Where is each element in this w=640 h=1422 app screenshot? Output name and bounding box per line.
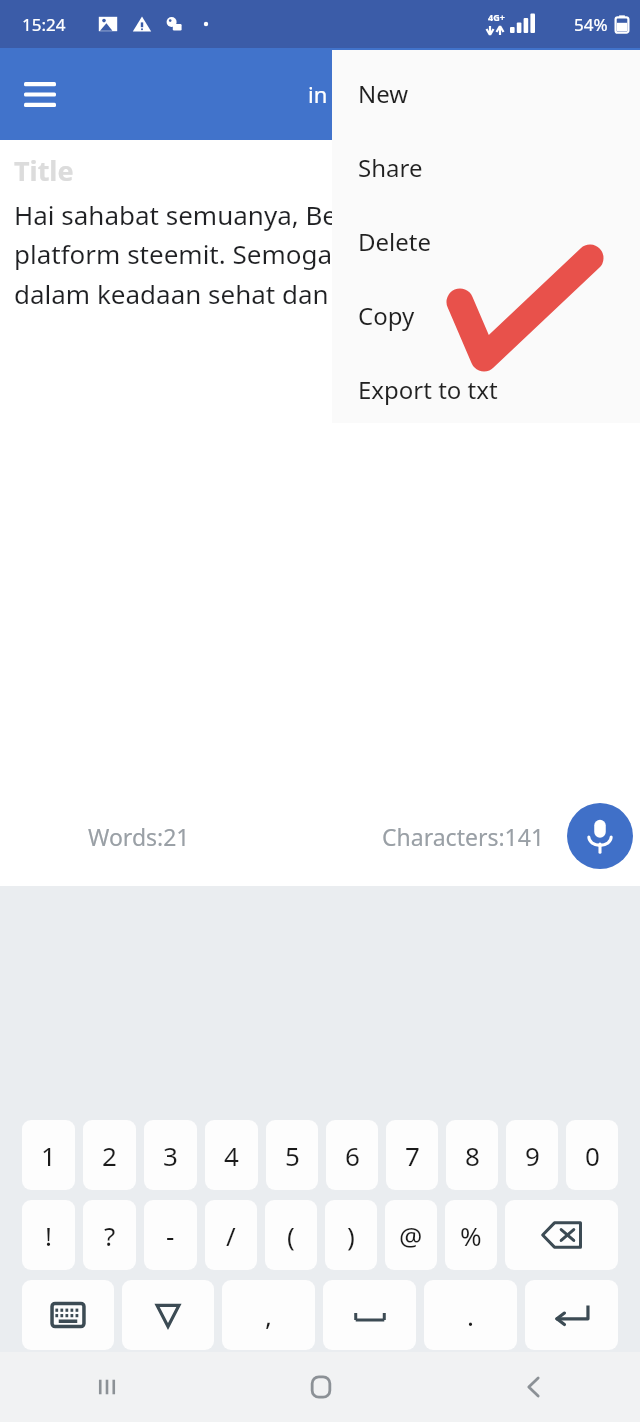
staticText: 4G+ [488,11,505,23]
staticText: Copy [358,299,415,332]
button[interactable]: 8 [446,1120,498,1190]
button[interactable]: Space [323,1280,416,1350]
button[interactable]: Voice input [567,803,633,869]
button[interactable]: - [144,1200,197,1270]
button[interactable]: Open navigation drawer [8,62,72,126]
button[interactable]: 1 [22,1120,75,1190]
button[interactable]: New [332,62,640,124]
staticText: 5 [285,1138,300,1173]
button[interactable]: @ [385,1200,437,1270]
staticText: Words:21 [88,821,190,852]
button[interactable]: 6 [326,1120,378,1190]
staticText: Delete [358,225,431,258]
button[interactable]: Copy [332,284,640,346]
staticText: 9 [525,1138,540,1173]
button[interactable]: ! [22,1200,75,1270]
staticText: New [358,77,409,110]
button[interactable]: ) [325,1200,377,1270]
staticText: Export to txt [358,373,498,406]
staticText: in [308,79,328,109]
staticText: 4 [224,1138,239,1173]
button[interactable]: 4 [205,1120,258,1190]
button[interactable]: Backspace [505,1200,618,1270]
button[interactable]: Enter [525,1280,618,1350]
button[interactable]: 2 [83,1120,136,1190]
button[interactable]: Hide keyboard [122,1280,214,1350]
staticText: , [265,1298,272,1333]
button[interactable]: / [205,1200,257,1270]
staticText: ! [45,1218,52,1253]
staticText: 15:24 [22,13,66,36]
staticText: 54% [574,13,608,36]
button[interactable]: ( [265,1200,317,1270]
button[interactable]: Switch keyboard [22,1280,114,1350]
staticText: 6 [345,1138,360,1173]
button[interactable]: 0 [566,1120,618,1190]
staticText: . [467,1298,474,1333]
button[interactable]: Back [427,1352,640,1422]
button[interactable]: , [222,1280,315,1350]
staticText: 3 [163,1138,178,1173]
button[interactable]: 3 [144,1120,197,1190]
button[interactable]: Delete [332,210,640,272]
staticText: ? [104,1218,116,1253]
staticText: 8 [465,1138,480,1173]
button[interactable]: 7 [386,1120,438,1190]
staticText: ( [287,1218,295,1253]
staticText: / [226,1218,236,1253]
staticText: % [460,1218,482,1253]
staticText: @ [399,1218,423,1253]
staticText: 7 [405,1138,420,1173]
staticText: - [166,1218,175,1253]
staticText: ) [347,1218,355,1253]
staticText: Hai sahabat semuanya, Bertemu kembali be… [14,197,634,312]
staticText: 0 [585,1138,600,1173]
staticText: 2 [102,1138,117,1173]
button[interactable]: Export to txt [332,358,640,420]
button[interactable]: 5 [266,1120,318,1190]
button[interactable]: . [424,1280,517,1350]
staticText: Title [14,152,74,189]
button[interactable]: Share [332,136,640,198]
staticText: 1 [41,1138,56,1173]
staticText: Share [358,151,423,184]
button[interactable]: Recent apps [0,1352,214,1422]
button[interactable]: Home [214,1352,427,1422]
staticText: Characters:141 [382,821,545,852]
button[interactable]: ? [83,1200,136,1270]
button[interactable]: % [445,1200,497,1270]
button[interactable]: 9 [506,1120,558,1190]
